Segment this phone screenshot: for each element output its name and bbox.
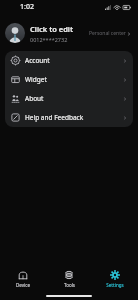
button[interactable]: Account (5, 51, 133, 70)
staticText: Tools (64, 282, 75, 288)
staticText: Widget (25, 75, 123, 84)
staticText: Device (16, 282, 30, 288)
staticText: Help and Feedback (25, 113, 123, 122)
button[interactable]: Help and Feedback (5, 108, 133, 127)
staticText: Settings (106, 282, 124, 288)
button[interactable]: Settings (92, 266, 138, 292)
button[interactable]: About (5, 89, 133, 108)
staticText: Click to edit (30, 24, 74, 34)
staticText: Account (25, 56, 123, 65)
button[interactable]: Device (0, 266, 46, 292)
staticText: 0012****2732 (30, 36, 68, 43)
button[interactable]: Click to edit (5, 20, 87, 46)
staticText: Personal center (89, 30, 126, 37)
staticText: 1:02 (20, 2, 34, 12)
button[interactable]: Personal center (87, 27, 133, 40)
staticText: About (25, 94, 123, 103)
button[interactable]: Tools (46, 266, 92, 292)
button[interactable]: Widget (5, 70, 133, 89)
